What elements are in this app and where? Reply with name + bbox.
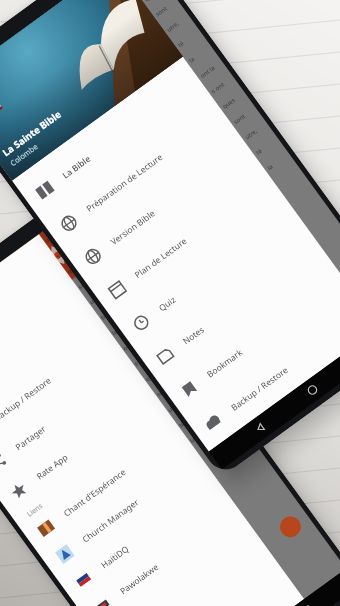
staticText: Quiz: [156, 293, 179, 314]
staticText: sont: [232, 112, 247, 126]
staticText: Church Manager: [80, 496, 141, 545]
button[interactable]: Church Manager: [38, 443, 209, 579]
button[interactable]: Rate App: [0, 378, 165, 518]
staticText: ques: [221, 96, 237, 111]
staticText: Liens: [25, 501, 45, 519]
staticText: Préparation de Lecture: [84, 151, 166, 215]
staticText: té: [177, 419, 187, 429]
button[interactable]: Backup / Restore: [184, 294, 340, 451]
staticText: té: [99, 312, 109, 322]
staticText: sont: [155, 385, 170, 399]
staticText: Partager: [13, 423, 48, 453]
staticText: Bookmark: [205, 346, 246, 380]
button[interactable]: Recents: [296, 599, 318, 606]
staticText: Plan de Lecture: [132, 235, 189, 281]
button[interactable]: Pawolakwe: [76, 495, 247, 606]
staticText: la: [188, 435, 197, 445]
button[interactable]: Compose: [276, 512, 305, 541]
button[interactable]: Chant d'Espérance: [20, 417, 191, 553]
button[interactable]: HaitiDQ: [57, 469, 228, 605]
button[interactable]: Bookmark: [160, 260, 340, 418]
staticText: Pawolakwe: [118, 561, 161, 597]
staticText: Rate App: [34, 451, 71, 482]
staticText: Backup / Restore: [0, 374, 54, 424]
staticText: Colombe: [8, 141, 40, 168]
staticText: HaitiDQ: [99, 543, 132, 571]
staticText: s ont: [54, 246, 70, 260]
button[interactable]: Backup / Restore: [0, 320, 123, 460]
button[interactable]: La Bible: [16, 61, 210, 219]
button[interactable]: Version Bible: [64, 128, 259, 285]
staticText: la: [266, 163, 274, 172]
staticText: ques: [144, 369, 160, 383]
button[interactable]: Préparation de Lecture: [40, 95, 234, 252]
staticText: Backup / Restore: [229, 364, 291, 414]
staticText: ont la: [199, 64, 216, 80]
staticText: ont la: [43, 229, 61, 245]
staticText: La Sainte Bible: [0, 107, 64, 159]
button[interactable]: Quiz: [112, 194, 307, 351]
button[interactable]: Back: [249, 416, 272, 439]
staticText: té: [254, 147, 264, 157]
staticText: Notes: [180, 323, 207, 347]
staticText: utre,: [243, 127, 259, 141]
staticText: ont la: [121, 337, 139, 353]
staticText: utre,: [166, 399, 182, 414]
staticText: La Bible: [60, 153, 93, 181]
staticText: s ont: [210, 81, 226, 95]
staticText: la: [110, 328, 119, 337]
button[interactable]: Plan de Lecture: [88, 161, 283, 318]
staticText: sont: [77, 277, 92, 291]
staticText: Version Bible: [108, 207, 158, 248]
staticText: té: [176, 39, 186, 49]
staticText: ques: [66, 261, 82, 276]
staticText: utre,: [88, 292, 104, 306]
staticText: la: [187, 55, 196, 64]
button[interactable]: Home: [301, 379, 324, 401]
button[interactable]: Notes: [136, 227, 331, 384]
staticText: Chant d'Espérance: [61, 466, 129, 519]
staticText: s ont: [133, 353, 149, 368]
staticText: sont: [154, 4, 169, 18]
button[interactable]: Partager: [0, 349, 144, 489]
staticText: utre,: [165, 19, 181, 34]
staticText: ques: [143, 0, 159, 3]
